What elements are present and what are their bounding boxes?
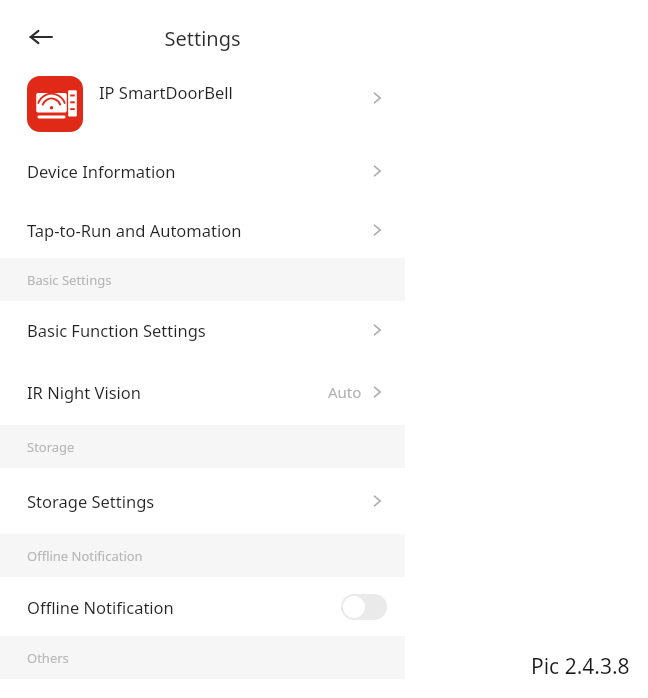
staticText: Device Information <box>27 160 176 182</box>
button[interactable]: IP SmartDoorBell <box>0 68 405 140</box>
staticText: Auto <box>328 382 362 402</box>
staticText: Storage Settings <box>27 490 155 512</box>
button[interactable]: Offline Notification <box>0 577 405 636</box>
staticText: Storage <box>27 438 75 456</box>
staticText: Settings <box>0 25 405 52</box>
staticText: Tap-to-Run and Automation <box>27 219 242 241</box>
staticText: Others <box>27 649 69 667</box>
button[interactable]: IR Night Vision <box>0 358 405 425</box>
staticText: IP SmartDoorBell <box>99 81 233 103</box>
staticText: IR Night Vision <box>27 381 142 403</box>
button[interactable]: Device Information <box>0 140 405 201</box>
staticText: Basic Function Settings <box>27 319 206 341</box>
staticText: Offline Notification <box>27 596 174 618</box>
button[interactable]: Offline Notification switch, off <box>341 594 387 620</box>
staticText: Basic Settings <box>27 271 112 289</box>
button[interactable]: Storage Settings <box>0 468 405 534</box>
staticText: Offline Notification <box>27 547 143 565</box>
button[interactable]: Back <box>21 17 61 57</box>
button[interactable]: Basic Function Settings <box>0 301 405 358</box>
button[interactable]: Tap-to-Run and Automation <box>0 201 405 258</box>
staticText: Pic 2.4.3.8 <box>531 652 630 681</box>
